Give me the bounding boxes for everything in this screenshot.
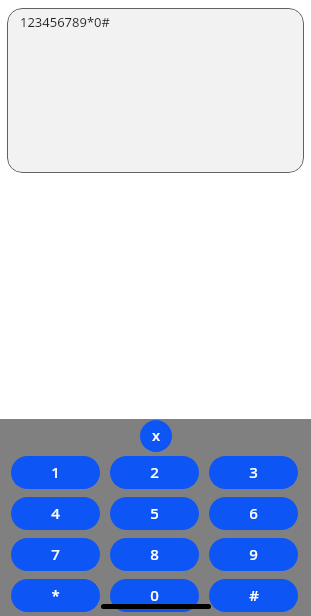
button[interactable]: # — [209, 579, 298, 612]
button[interactable]: 4 — [11, 497, 100, 530]
staticText: * — [51, 585, 60, 605]
staticText: 0 — [150, 585, 159, 605]
staticText: 2 — [150, 462, 159, 482]
button[interactable]: 5 — [110, 497, 199, 530]
button[interactable]: 6 — [209, 497, 298, 530]
staticText: 1 — [51, 462, 60, 482]
button[interactable]: 0 — [110, 579, 199, 612]
button[interactable]: 1 — [11, 456, 100, 489]
staticText: 5 — [150, 503, 159, 523]
staticText: # — [249, 585, 259, 605]
staticText: 6 — [249, 503, 258, 523]
button[interactable]: 7 — [11, 538, 100, 571]
button[interactable]: Close keypad — [140, 420, 172, 452]
button[interactable]: 2 — [110, 456, 199, 489]
staticText: 9 — [249, 544, 258, 564]
button[interactable]: Dialled number input — [7, 8, 304, 173]
staticText: 3 — [249, 462, 258, 482]
staticText: 7 — [51, 544, 60, 564]
button[interactable]: * — [11, 579, 100, 612]
staticText: 123456789*0# — [20, 13, 110, 31]
staticText: 4 — [51, 503, 60, 523]
staticText: x — [152, 425, 161, 445]
button[interactable]: 3 — [209, 456, 298, 489]
button[interactable]: 8 — [110, 538, 199, 571]
button[interactable]: 9 — [209, 538, 298, 571]
staticText: 8 — [150, 544, 159, 564]
